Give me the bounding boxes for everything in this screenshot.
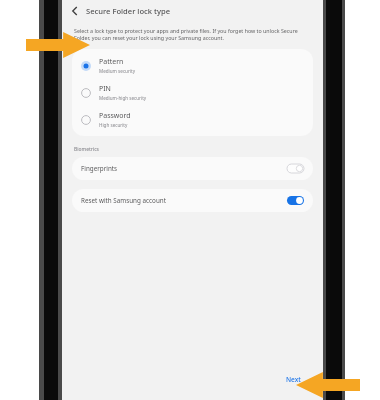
button[interactable]: Password bbox=[72, 106, 313, 133]
staticText: Fingerprints bbox=[81, 164, 118, 173]
button[interactable]: Next bbox=[280, 372, 307, 387]
button[interactable]: PIN bbox=[72, 79, 313, 106]
staticText: Reset with Samsung account bbox=[81, 196, 166, 205]
staticText: Password bbox=[99, 111, 131, 121]
staticText: Secure Folder lock type bbox=[86, 6, 170, 16]
staticText: Pattern bbox=[99, 57, 124, 67]
staticText: High security bbox=[99, 122, 128, 128]
staticText: Next bbox=[286, 375, 301, 384]
staticText: PIN bbox=[99, 84, 111, 94]
staticText: Select a lock type to protect your apps … bbox=[74, 27, 311, 42]
button[interactable]: Fingerprints bbox=[72, 157, 313, 180]
button[interactable]: Back bbox=[67, 3, 83, 19]
staticText: Biometrics bbox=[74, 146, 99, 153]
staticText: Medium-high security bbox=[99, 95, 147, 101]
button[interactable]: Reset with Samsung account bbox=[72, 189, 313, 212]
staticText: Medium security bbox=[99, 68, 136, 74]
button[interactable]: Pattern bbox=[72, 52, 313, 79]
